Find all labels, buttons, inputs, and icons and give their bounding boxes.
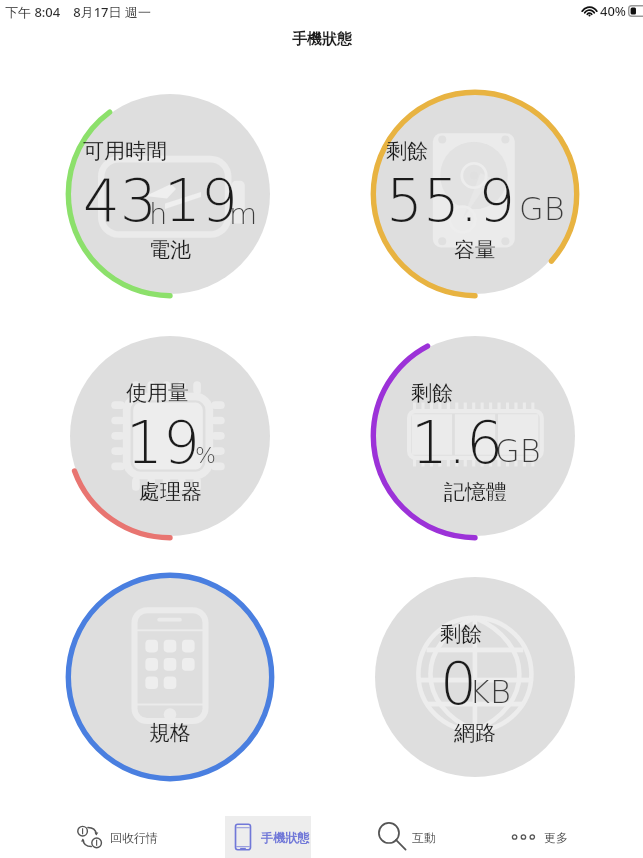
other: 手機狀態 [232,826,254,848]
button[interactable] [224,818,324,852]
staticText: m [229,197,258,231]
staticText: 19 [126,409,200,477]
staticText: 剩餘 [386,138,428,164]
staticText: GB [495,432,541,469]
staticText: 互動 [412,830,436,845]
other: 回收行情 [77,824,103,850]
staticText: 網路 [454,720,496,746]
staticText: 1.6 [411,409,504,477]
staticText: 55.9 [386,167,516,235]
staticText: GB [519,190,565,227]
button[interactable]: 55.9 [370,89,580,299]
staticText: 規格 [149,720,191,746]
staticText: 回收行情 [110,830,158,845]
staticText: 剩餘 [411,380,453,406]
staticText: 電池 [149,237,191,263]
staticText: 19 [164,167,238,235]
staticText: 手機狀態 [261,830,309,845]
staticText: 40% [600,2,626,20]
button[interactable]: 19 [65,331,275,541]
staticText: 容量 [454,237,496,263]
button[interactable]: 43 [65,89,275,299]
other: 更多 [512,824,538,850]
staticText: 手機狀態 [292,30,352,49]
staticText: 可用時間 [83,138,167,164]
staticText: % [195,443,216,469]
staticText: 43 [83,167,157,235]
button[interactable]: 1.6 [370,331,580,541]
button[interactable] [504,818,604,852]
staticText: 處理器 [139,479,202,505]
staticText: h [149,197,168,231]
staticText: 記憶體 [444,479,507,505]
button[interactable]: 0 [370,572,580,782]
button[interactable] [370,818,470,852]
button[interactable]: 規格 [65,572,275,782]
staticText: 剩餘 [440,621,482,647]
staticText: 0 [440,650,477,718]
other: 互動 [378,822,408,852]
staticText: 使用量 [126,380,189,406]
button[interactable] [69,818,169,852]
staticText: 更多 [544,830,568,845]
staticText: 下午 8:04 8月17日 週一 [5,3,151,21]
staticText: KB [469,673,511,710]
